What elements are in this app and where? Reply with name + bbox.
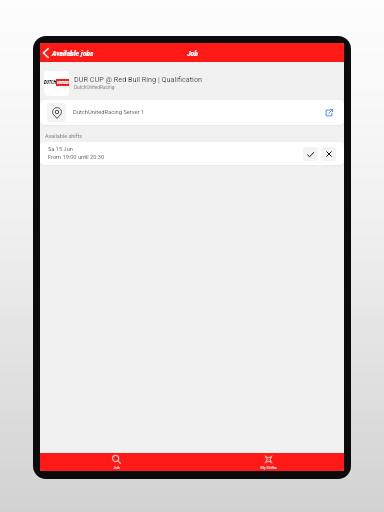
button[interactable]: Available jobs <box>40 43 100 62</box>
button[interactable]: DutchUnitedRacing Server 1 <box>40 100 344 125</box>
staticText: DUR CUP @ Red Bull Ring | Qualification <box>74 75 203 83</box>
staticText: DUTCH <box>44 80 56 86</box>
staticText: Available shifts <box>45 133 83 139</box>
staticText: Sa 15 Jun <box>48 146 73 153</box>
button[interactable]: Accept shift <box>303 147 318 161</box>
staticText: DutchUnitedRacing <box>74 85 115 91</box>
staticText: UNITED <box>57 80 69 85</box>
button[interactable]: Open server link <box>325 109 333 117</box>
staticText: From 19:00 until 20:30 <box>48 154 105 161</box>
button[interactable]: Decline shift <box>321 147 336 161</box>
staticText: DutchUnitedRacing Server 1 <box>73 109 145 116</box>
button[interactable]: My Shifts <box>192 453 344 471</box>
staticText: Available jobs <box>52 49 94 58</box>
staticText: Job <box>113 465 120 469</box>
staticText: Job <box>187 49 198 58</box>
button[interactable]: Job <box>40 453 192 471</box>
staticText: My Shifts <box>260 465 277 469</box>
